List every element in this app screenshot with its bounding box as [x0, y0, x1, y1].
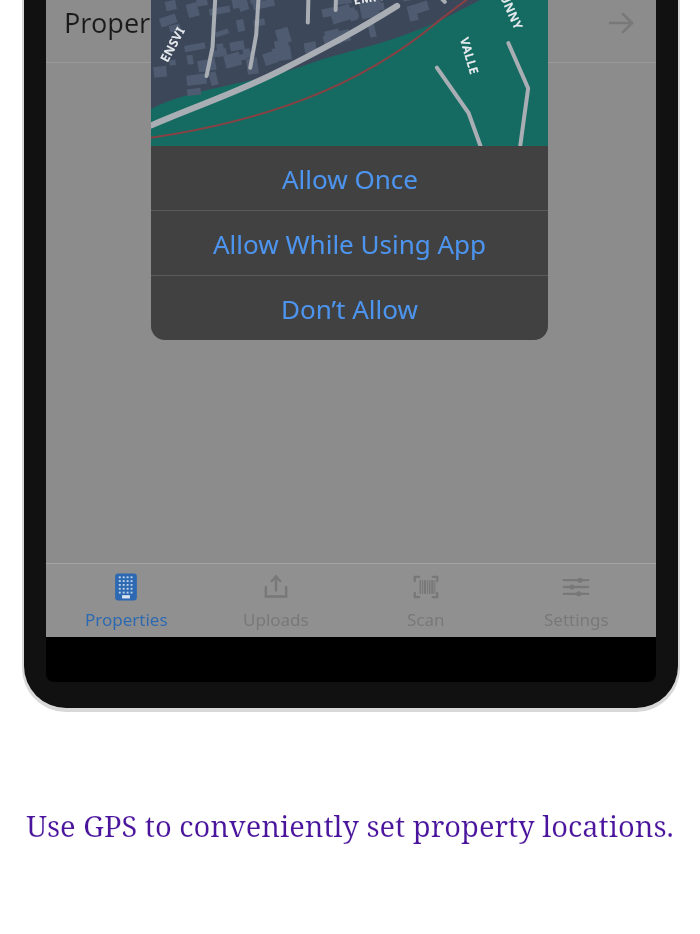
staticText: Scan	[407, 608, 445, 631]
other: Open	[606, 8, 636, 38]
button[interactable]: Uploads	[206, 564, 346, 637]
button[interactable]: Property	[46, 0, 656, 62]
button[interactable]: Allow Once	[151, 146, 548, 210]
staticText: Properties	[85, 608, 168, 631]
staticText: Property	[64, 4, 174, 41]
staticText: Allow While Using App	[213, 226, 487, 261]
button[interactable]: Settings	[506, 564, 646, 637]
staticText: Use GPS to conveniently set property loc…	[26, 806, 674, 845]
staticText: ENSVI	[156, 23, 188, 65]
button[interactable]: Scan	[356, 564, 496, 637]
staticText: Allow Once	[282, 161, 418, 196]
staticText: VALLE	[457, 35, 483, 76]
staticText: EMPIRE DR	[352, 0, 424, 7]
staticText: Don’t Allow	[281, 291, 418, 326]
button[interactable]: Allow While Using App	[151, 211, 548, 275]
staticText: BUNNY	[494, 0, 527, 33]
button[interactable]: Don’t Allow	[151, 276, 548, 340]
staticText: Settings	[544, 608, 609, 631]
button[interactable]: Properties	[56, 564, 196, 637]
staticText: Uploads	[243, 608, 309, 631]
